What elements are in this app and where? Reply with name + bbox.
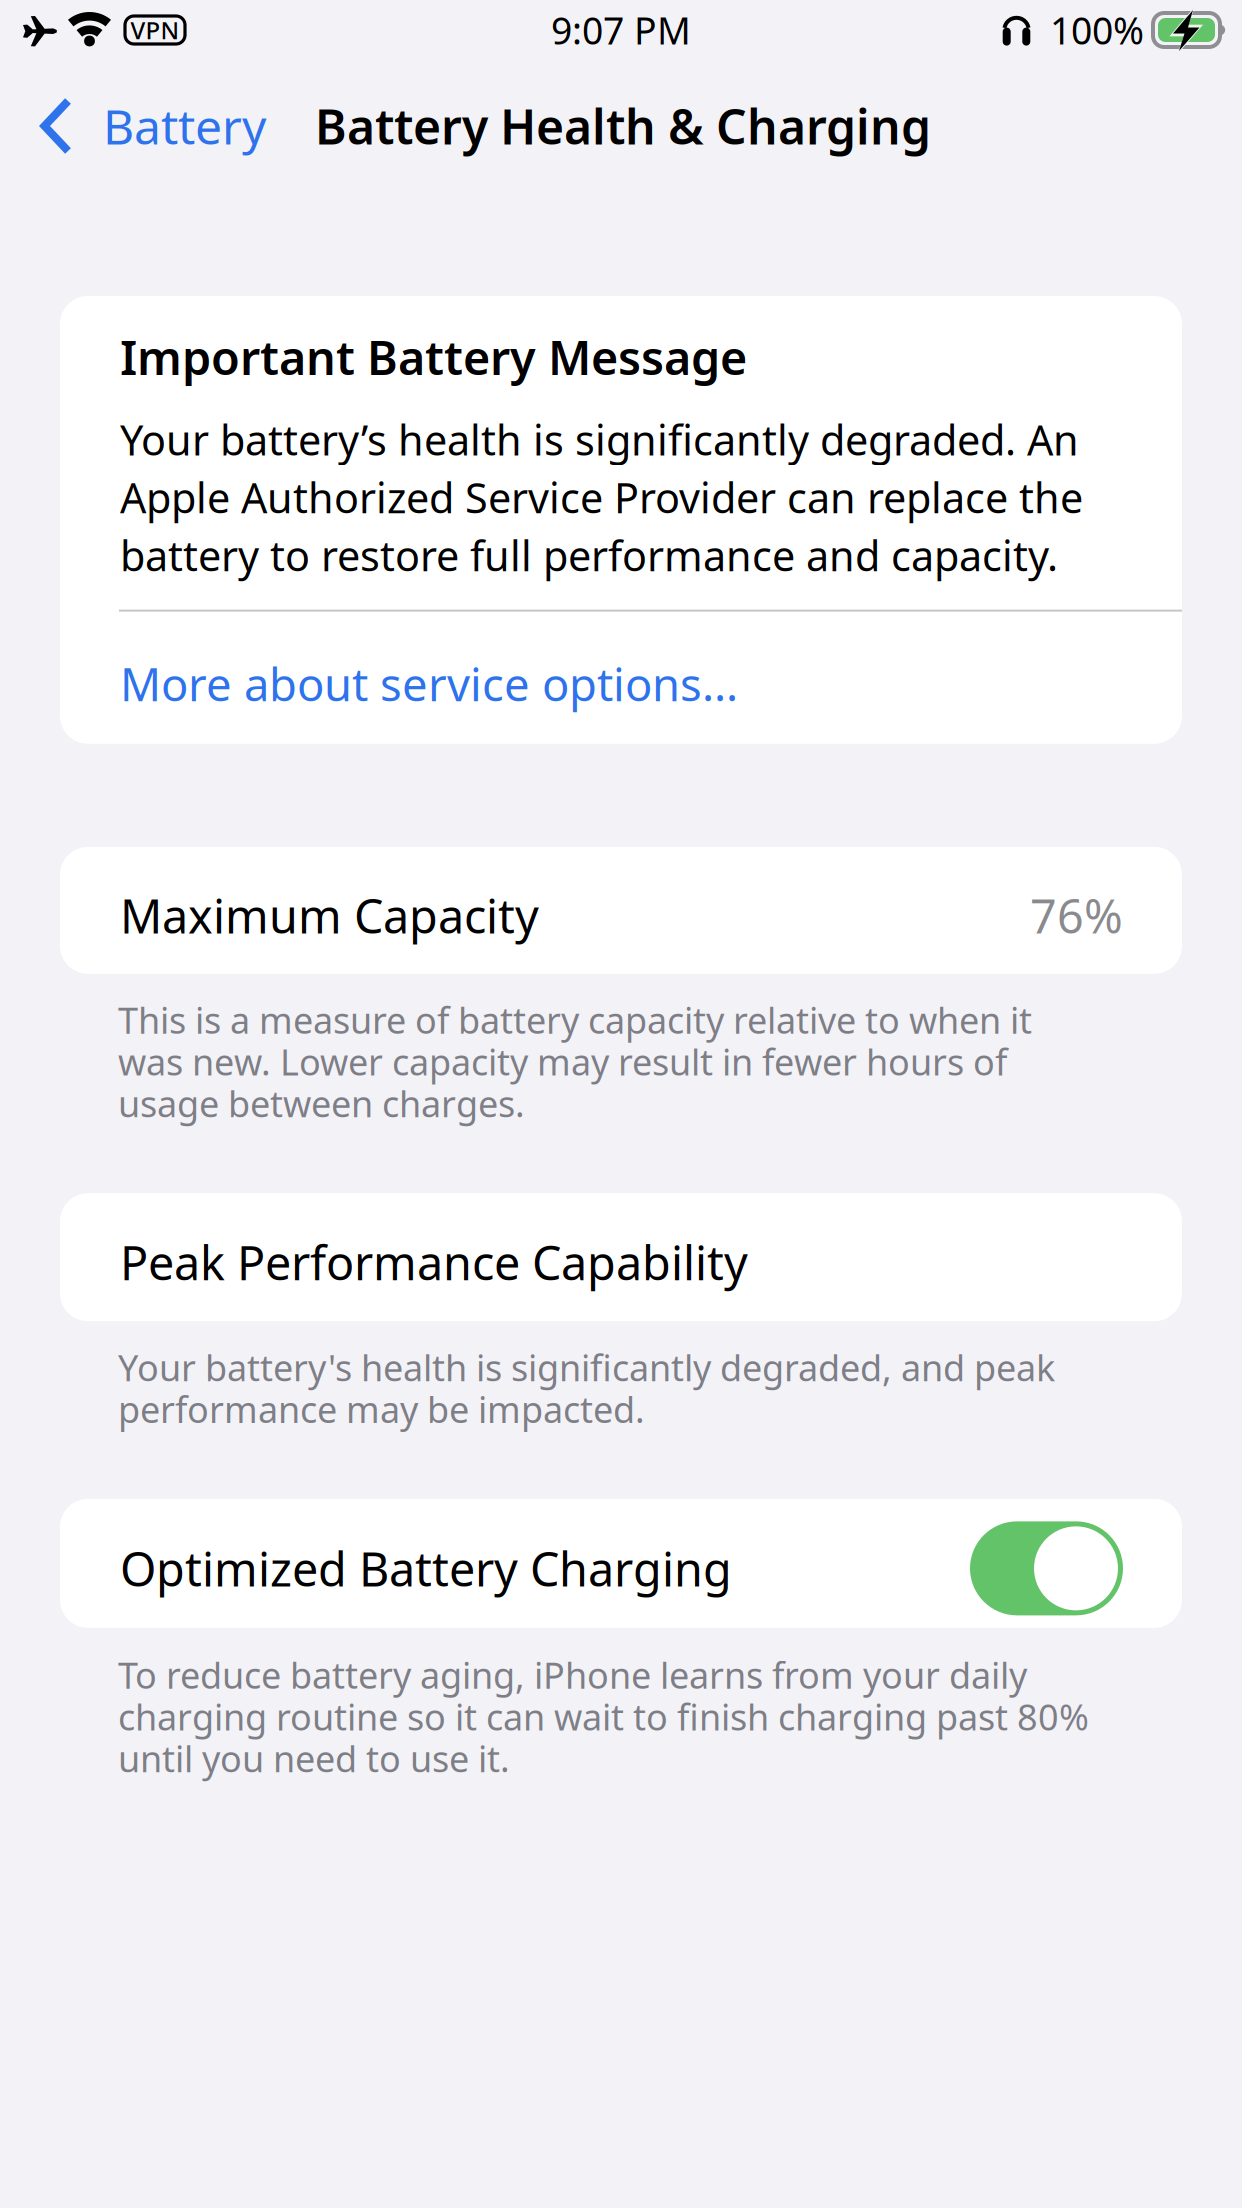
staticText: 76%	[1030, 884, 1123, 946]
staticText: Peak Performance Capability	[120, 1231, 748, 1293]
button[interactable]: Peak Performance Capability	[60, 1193, 1182, 1321]
staticText: 9:07 PM	[551, 5, 691, 55]
staticText: More about service options...	[120, 654, 738, 714]
staticText: 100%	[1050, 5, 1144, 55]
staticText: VPN	[130, 14, 179, 46]
staticText: Maximum Capacity	[120, 884, 539, 946]
staticText: Your battery's health is significantly d…	[118, 1343, 1055, 1433]
button[interactable]: More about service options...	[60, 612, 1182, 744]
staticText: Battery Health & Charging	[315, 94, 931, 158]
staticText: Optimized Battery Charging	[120, 1537, 732, 1599]
button[interactable]: Battery	[0, 60, 282, 192]
staticText: This is a measure of battery capacity re…	[118, 996, 1032, 1127]
staticText: Battery	[103, 94, 266, 158]
staticText: Your battery’s health is significantly d…	[120, 412, 1083, 583]
staticText: To reduce battery aging, iPhone learns f…	[118, 1651, 1089, 1782]
button[interactable]: Optimized Battery Charging	[970, 1521, 1123, 1615]
staticText: Important Battery Message	[120, 326, 747, 388]
